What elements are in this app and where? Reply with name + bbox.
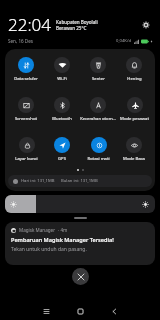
button[interactable]: Magisk Manager bbox=[5, 222, 155, 265]
button[interactable]: Brightness bbox=[5, 195, 155, 213]
staticText: Mode pesawat bbox=[120, 116, 149, 122]
staticText: Bulan ini: 131,1MB bbox=[61, 178, 98, 184]
button[interactable]: Recents bbox=[29, 302, 63, 320]
staticText: GPS bbox=[58, 156, 66, 162]
button[interactable]: Senter bbox=[90, 55, 106, 82]
button[interactable]: Layar kunci bbox=[15, 135, 38, 162]
button[interactable]: GPS bbox=[54, 135, 70, 162]
button[interactable]: Mode pesawat bbox=[120, 95, 149, 122]
staticText: 22:04 bbox=[8, 13, 51, 36]
button[interactable]: Clear all notifications bbox=[72, 268, 89, 285]
staticText: Hari ini: 131,1MB bbox=[21, 178, 55, 184]
button[interactable]: Kecerahan otomatis bbox=[80, 95, 116, 122]
button[interactable]: Hari ini: 131,1MB bbox=[8, 175, 152, 187]
staticText: Data seluler bbox=[14, 76, 38, 82]
staticText: Pembaruan Magisk Manager Tersedia! bbox=[11, 236, 114, 244]
staticText: Layar kunci bbox=[15, 156, 38, 162]
button[interactable]: Back bbox=[97, 302, 131, 320]
button[interactable]: Rotasi mati bbox=[87, 135, 110, 162]
staticText: Rotasi mati bbox=[87, 156, 110, 162]
staticText: Sen, 16 Des bbox=[8, 38, 33, 44]
staticText: Screenshot bbox=[15, 116, 37, 122]
staticText: Tekan untuk unduh dan pasang. bbox=[11, 246, 87, 253]
staticText: Magisk Manager bbox=[19, 227, 56, 233]
button[interactable]: Data seluler bbox=[14, 55, 38, 82]
button[interactable]: Mode Baca bbox=[123, 135, 145, 162]
staticText: Senter bbox=[92, 76, 105, 82]
button[interactable]: Home bbox=[63, 302, 97, 320]
button[interactable]: Bluetooth bbox=[52, 95, 72, 122]
button[interactable]: Hening bbox=[126, 55, 142, 82]
button[interactable]: Wi-Fi bbox=[54, 55, 70, 82]
staticText: Kabupaten Boyolali bbox=[56, 19, 98, 25]
staticText: · 4m bbox=[58, 227, 68, 233]
staticText: Hening bbox=[127, 76, 142, 82]
staticText: Berawan 25°C bbox=[56, 25, 87, 31]
button[interactable]: Settings bbox=[140, 19, 152, 31]
staticText: Wi-Fi bbox=[57, 76, 67, 82]
staticText: Kecerahan otomatis bbox=[80, 116, 116, 122]
button[interactable]: Screenshot bbox=[15, 95, 37, 122]
staticText: Mode Baca bbox=[123, 156, 145, 162]
staticText: Bluetooth bbox=[52, 116, 72, 122]
staticText: 0,04K/d bbox=[116, 38, 132, 44]
